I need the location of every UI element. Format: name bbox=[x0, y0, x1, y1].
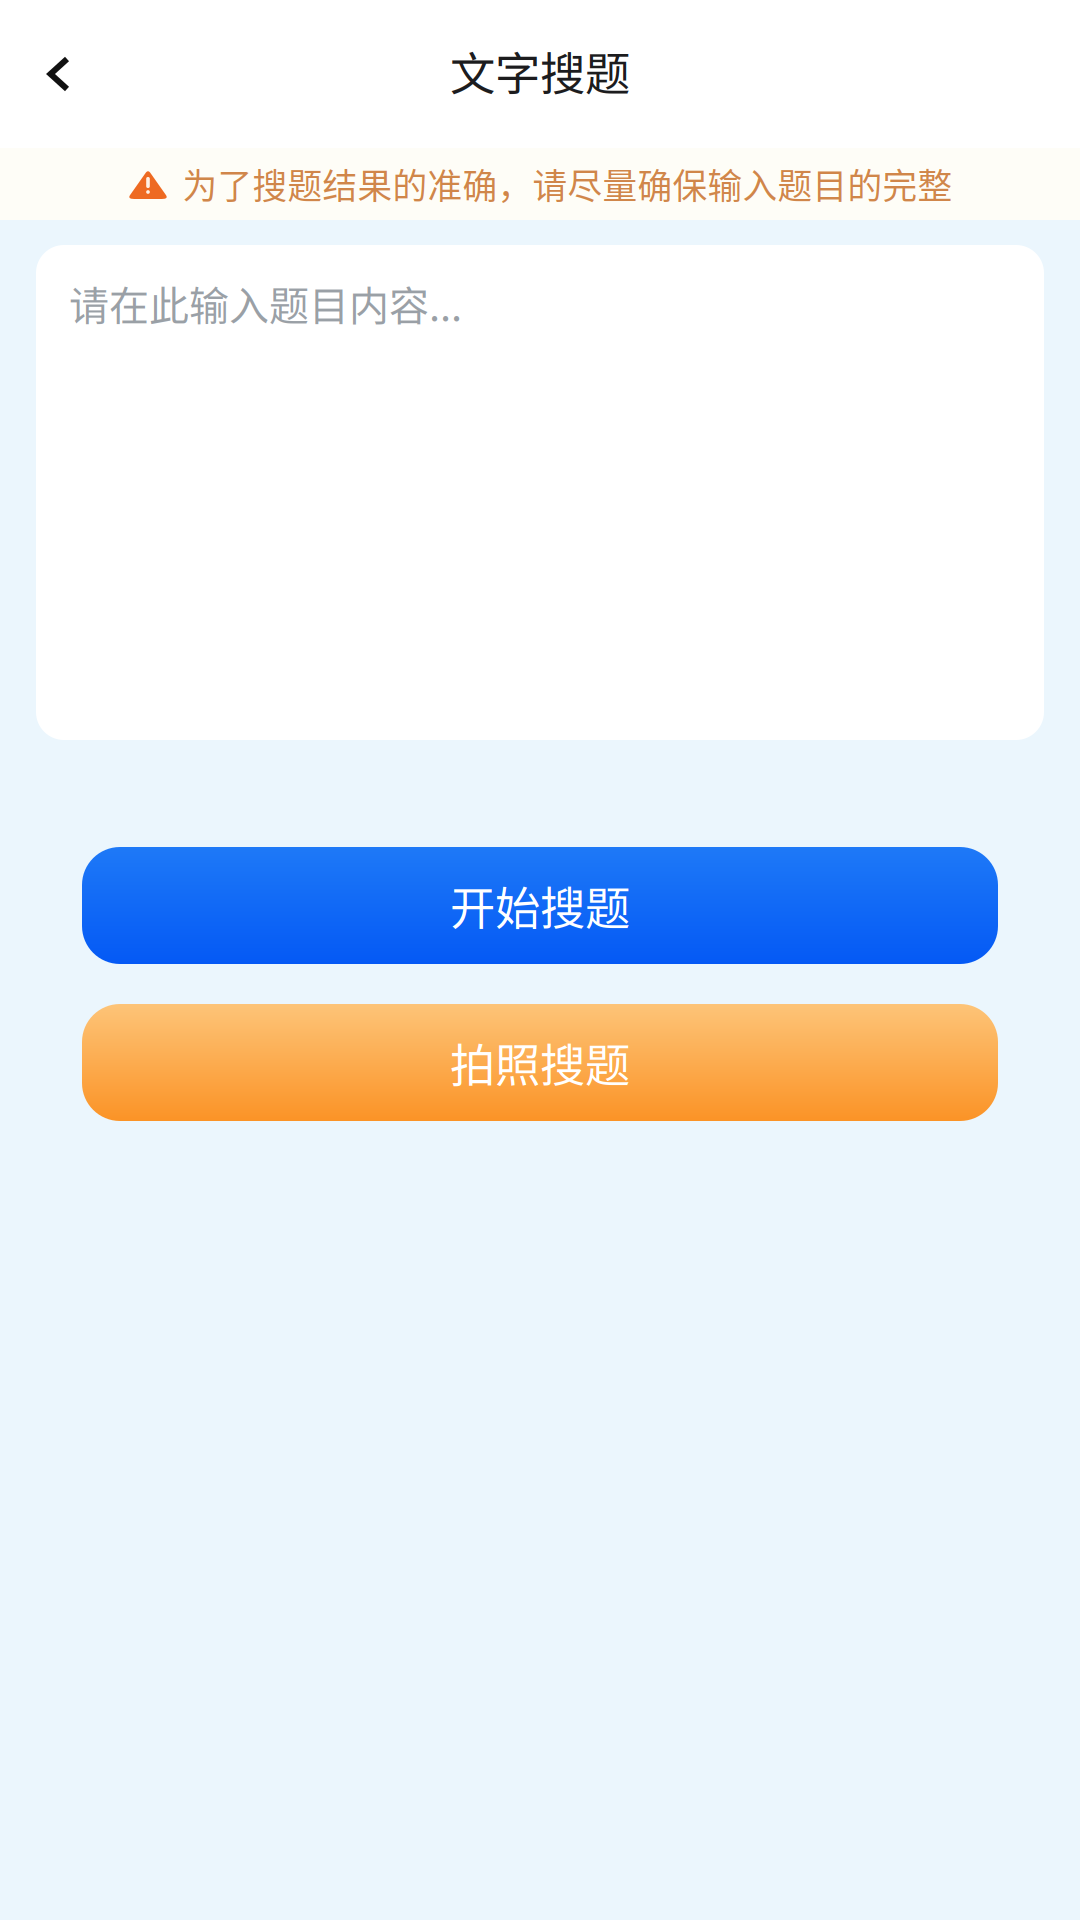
button[interactable]: Back bbox=[0, 19, 118, 129]
button[interactable]: 开始搜题 bbox=[82, 847, 998, 964]
staticText: 拍照搜题 bbox=[450, 1030, 630, 1095]
button[interactable]: 请在此输入题目内容... bbox=[36, 245, 1044, 740]
staticText: 文字搜题 bbox=[450, 38, 630, 104]
button[interactable]: 拍照搜题 bbox=[82, 1004, 998, 1121]
staticText: 为了搜题结果的准确，请尽量确保输入题目的完整 bbox=[182, 159, 952, 209]
staticText: 请在此输入题目内容... bbox=[69, 274, 462, 332]
staticText: 开始搜题 bbox=[450, 873, 630, 938]
